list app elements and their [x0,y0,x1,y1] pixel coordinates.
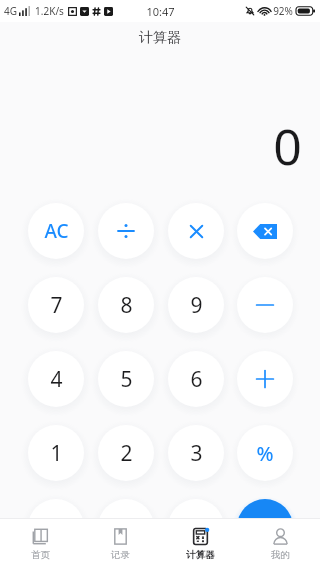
button[interactable]: Equals [237,499,293,555]
staticText: 5 [120,365,133,394]
staticText: 9 [190,291,203,320]
button[interactable]: 记录 [80,522,160,561]
button[interactable]: Minus [237,277,293,333]
staticText: 6 [190,365,203,394]
staticText: 92% [273,4,293,18]
button[interactable]: 4 [28,351,84,407]
button[interactable]: Plus [237,351,293,407]
button[interactable]: 计算器 [160,522,240,561]
staticText: 8 [120,291,133,320]
staticText: 0 [273,112,302,180]
button[interactable]: 2 [98,425,154,481]
staticText: 10:47 [146,4,175,19]
button[interactable]: 1 [28,425,84,481]
button[interactable]: 首页 [0,522,80,561]
staticText: 4G [4,4,17,18]
staticText: 2 [120,439,133,468]
button[interactable]: 9 [168,277,224,333]
staticText: 首页 [31,549,50,561]
staticText: 计算器 [139,29,181,47]
staticText: 1 [50,439,63,468]
staticText: 我的 [271,549,290,561]
staticText: 7 [50,291,63,320]
button[interactable]: Percent [237,425,293,481]
staticText: 1.2K/s [35,4,64,18]
button[interactable]: Decimal point [168,499,224,555]
button[interactable]: Unit conversion [28,499,84,555]
staticText: % [256,440,274,467]
button[interactable]: AC [28,203,84,259]
button[interactable]: 5 [98,351,154,407]
staticText: 记录 [111,549,130,561]
button[interactable]: Multiply [168,203,224,259]
button[interactable]: 0 [98,499,154,555]
staticText: 计算器 [186,549,215,561]
button[interactable]: 7 [28,277,84,333]
button[interactable]: Divide [98,203,154,259]
button[interactable]: Backspace [237,203,293,259]
staticText: AC [44,218,69,244]
button[interactable]: 8 [98,277,154,333]
staticText: 0 [120,513,133,542]
button[interactable]: 3 [168,425,224,481]
button[interactable]: 我的 [240,522,320,561]
staticText: . [193,513,199,542]
button[interactable]: 6 [168,351,224,407]
staticText: 3 [190,439,203,468]
staticText: 4 [50,365,63,394]
